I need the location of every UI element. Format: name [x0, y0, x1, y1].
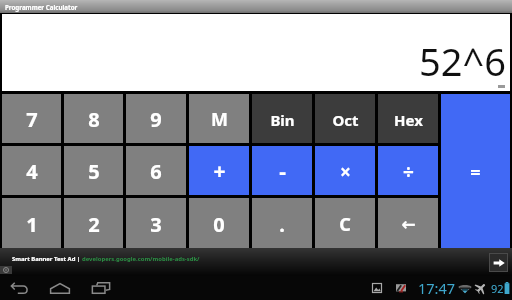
button[interactable]: Ad information	[0, 266, 12, 274]
button[interactable]: 5	[64, 146, 123, 195]
staticText: 1	[26, 211, 38, 238]
button[interactable]: 9	[126, 94, 186, 143]
staticText: 0	[213, 211, 225, 238]
button[interactable]: Home	[48, 278, 72, 298]
button[interactable]: 1	[2, 198, 61, 248]
staticText: 92	[491, 281, 504, 296]
staticText: =	[470, 160, 481, 185]
button[interactable]: =	[441, 94, 510, 248]
staticText: 9	[150, 106, 162, 133]
staticText: 17:47	[418, 278, 456, 298]
staticText: 52^6	[419, 35, 506, 87]
staticText: 8	[88, 106, 100, 133]
button[interactable]: -	[252, 146, 312, 195]
button[interactable]: ÷	[378, 146, 438, 195]
button[interactable]: .	[252, 198, 312, 248]
staticText: 6	[150, 158, 162, 185]
staticText: .	[279, 211, 285, 238]
button[interactable]: C	[315, 198, 375, 248]
button[interactable]: 2	[64, 198, 123, 248]
staticText: -	[279, 157, 286, 186]
staticText: developers.google.com/mobile-ads-sdk/	[82, 255, 200, 263]
button[interactable]: Hex	[378, 94, 438, 143]
button[interactable]: 0	[189, 198, 249, 248]
button[interactable]: Back	[7, 278, 31, 298]
button[interactable]: 4	[2, 146, 61, 195]
staticText: ÷	[403, 159, 414, 185]
staticText: Hex	[394, 110, 423, 130]
staticText: Oct	[332, 110, 359, 130]
staticText: Bin	[270, 110, 295, 130]
button[interactable]: Recent apps	[89, 278, 113, 298]
button[interactable]: +	[189, 146, 249, 195]
staticText: +	[213, 157, 226, 186]
button[interactable]: ←	[378, 198, 438, 248]
staticText: 5	[88, 158, 100, 185]
staticText: M	[211, 107, 228, 132]
button[interactable]: 3	[126, 198, 186, 248]
staticText: Programmer Calculator	[5, 3, 78, 11]
button[interactable]: Bin	[252, 94, 312, 143]
staticText: 2	[88, 211, 100, 238]
staticText: ×	[340, 159, 351, 185]
staticText: 7	[26, 106, 38, 133]
button[interactable]: ×	[315, 146, 375, 195]
button[interactable]: Oct	[315, 94, 375, 143]
staticText: C	[339, 212, 351, 237]
button[interactable]: M	[189, 94, 249, 143]
button[interactable]: Open advertisement	[490, 254, 507, 271]
staticText: ←	[401, 214, 416, 234]
button[interactable]: 8	[64, 94, 123, 143]
staticText: Smart Banner Test Ad |	[12, 255, 82, 263]
button[interactable]: 6	[126, 146, 186, 195]
button[interactable]: 7	[2, 94, 61, 143]
staticText: 4	[26, 158, 38, 185]
staticText: 3	[150, 211, 162, 238]
